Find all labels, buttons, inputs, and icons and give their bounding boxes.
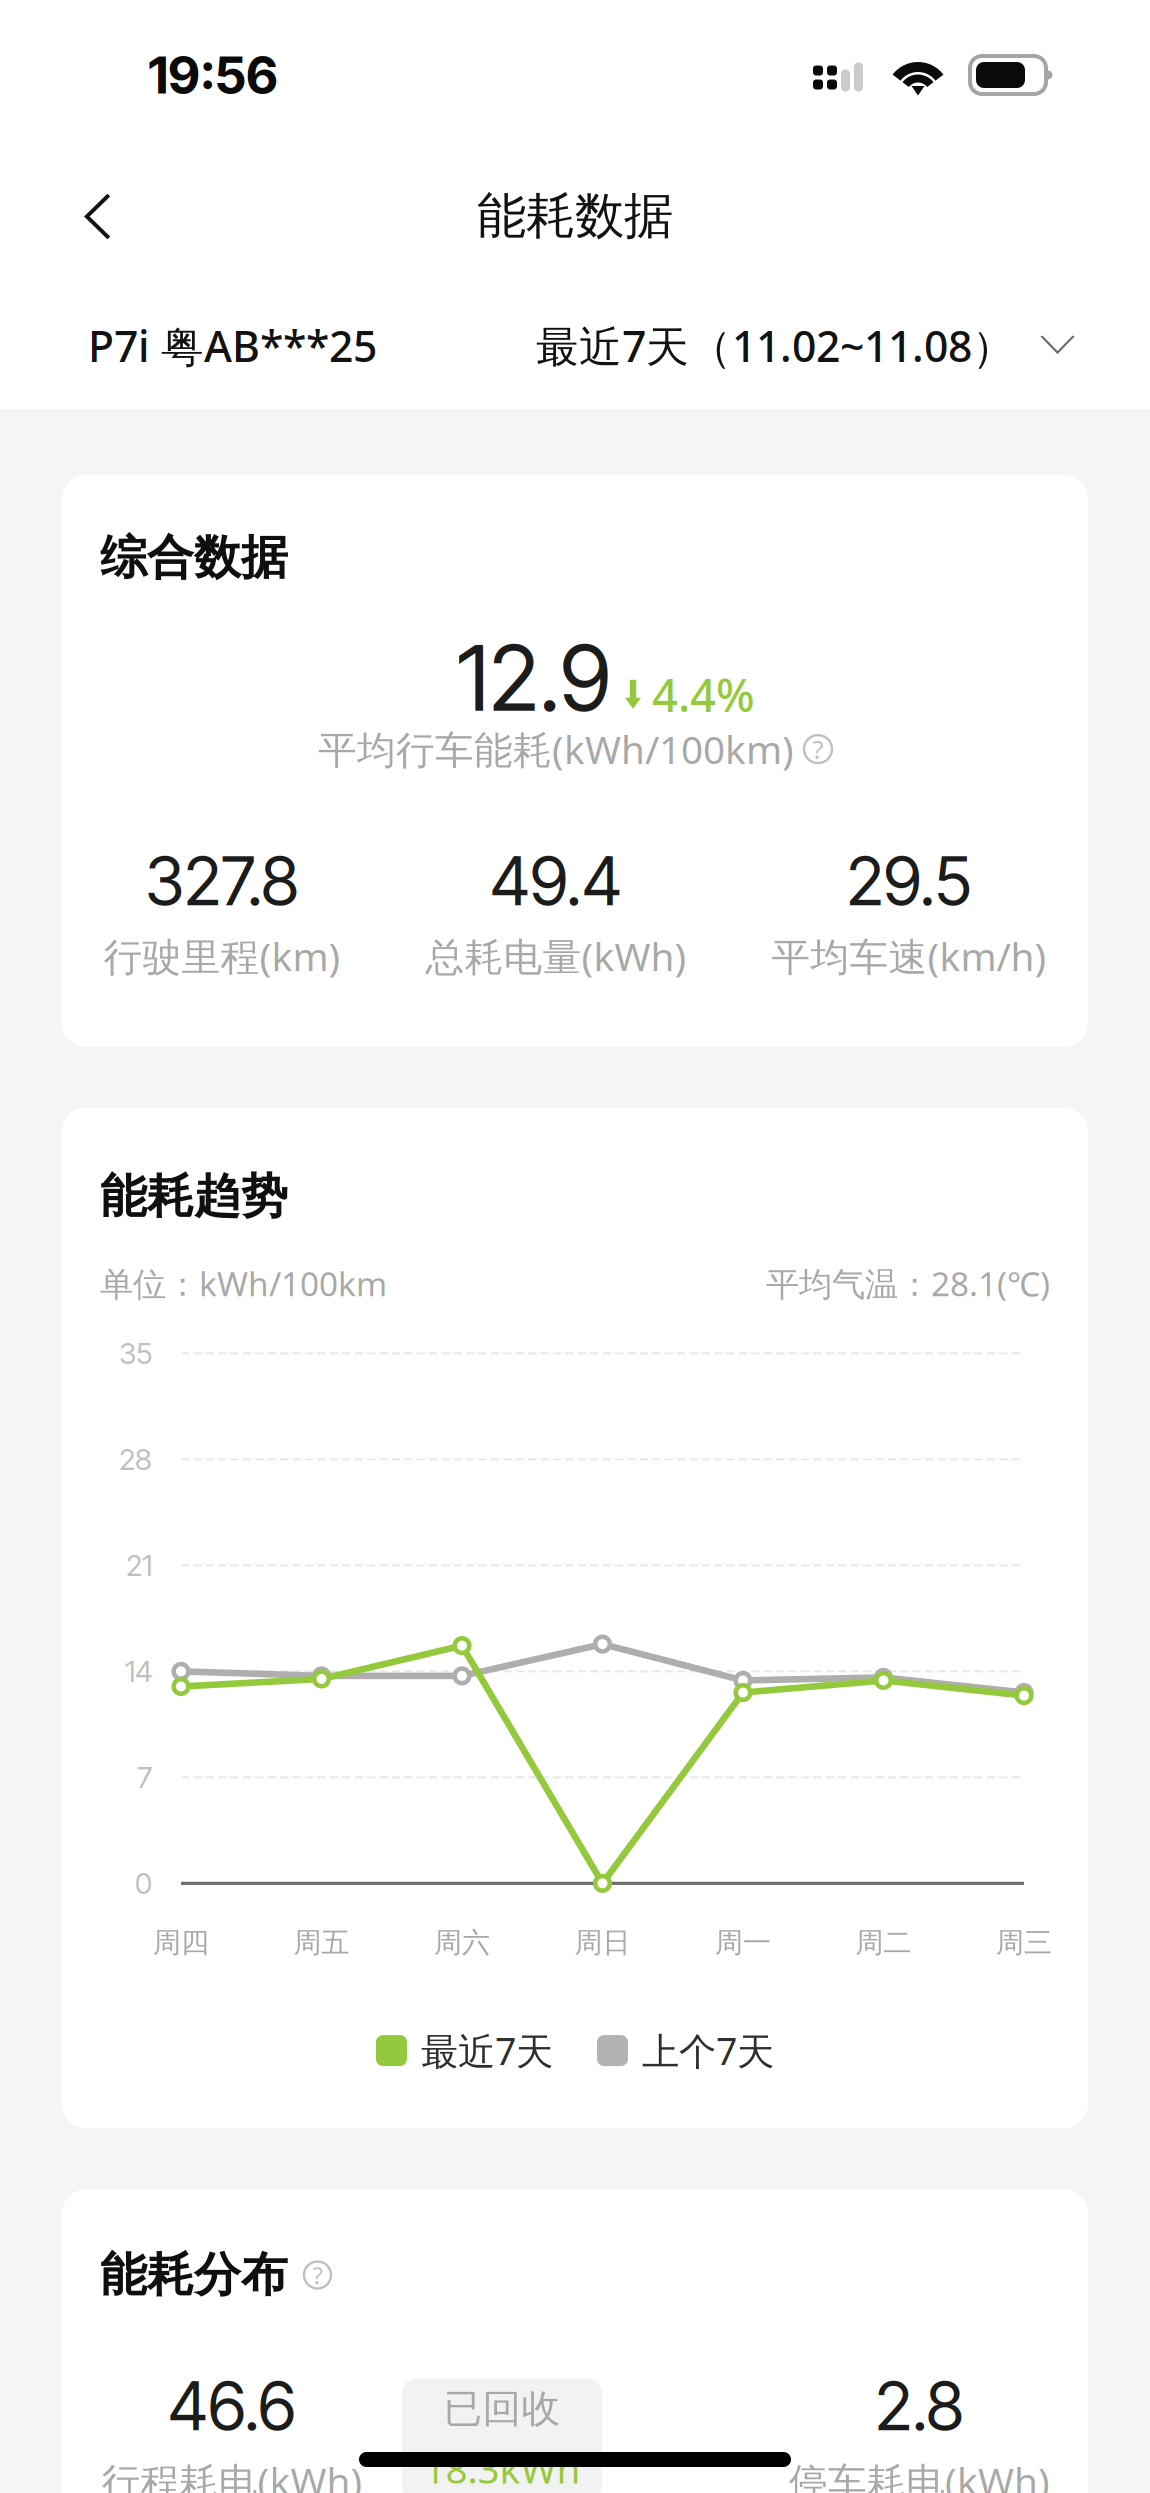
staticText: 平均气温：28.1(℃) [766,1261,1050,1305]
staticText: 35 [119,1336,152,1371]
staticText: 周三 [996,1925,1052,1960]
staticText: 周日 [574,1925,630,1960]
staticText: P7i 粤AB***25 [88,317,377,374]
button[interactable]: Back [48,164,147,267]
staticText: 周一 [715,1925,771,1960]
staticText: 已回收 [443,2385,560,2433]
staticText: 0 [135,1866,152,1901]
staticText: ? [312,2259,322,2291]
staticText: 14 [125,1654,152,1689]
staticText: 327.8 [145,841,299,921]
staticText: 19:56 [148,44,278,106]
staticText: 周六 [434,1925,490,1960]
staticText: 行驶里程(km) [103,930,340,982]
staticText: 上个7天 [642,2026,774,2075]
staticText: 49.4 [490,841,622,921]
staticText: 周五 [293,1925,349,1960]
staticText: 2.8 [875,2366,964,2446]
staticText: 能耗趋势 [100,1168,288,1225]
staticText: 总耗电量(kWh) [425,930,686,982]
staticText: 行程耗电(kWh) [101,2455,362,2493]
staticText: 7 [137,1760,152,1795]
staticText: 周四 [153,1925,209,1960]
staticText: 综合数据 [100,529,288,586]
button[interactable]: 最近7天（11.02~11.08） [536,317,1076,374]
staticText: 12.9 [457,624,611,732]
staticText: ? [812,732,823,766]
staticText: 单位：kWh/100km [100,1261,387,1305]
staticText: 能耗分布 [100,2246,288,2304]
staticText: 最近7天（11.02~11.08） [536,317,1015,374]
staticText: 4.4% [652,664,755,724]
staticText: 最近7天 [421,2026,553,2075]
staticText: 停车耗电(kWh) [789,2455,1050,2493]
staticText: 29.5 [846,841,971,921]
staticText: 18.3kWh [423,2443,580,2493]
staticText: 平均行车能耗(kWh/100km) [318,723,794,775]
staticText: 28 [119,1442,152,1477]
staticText: 46.6 [168,2366,296,2446]
staticText: 21 [126,1548,152,1583]
staticText: 平均车速(km/h) [771,930,1046,982]
staticText: 能耗数据 [477,186,673,246]
staticText: 周二 [855,1925,911,1960]
